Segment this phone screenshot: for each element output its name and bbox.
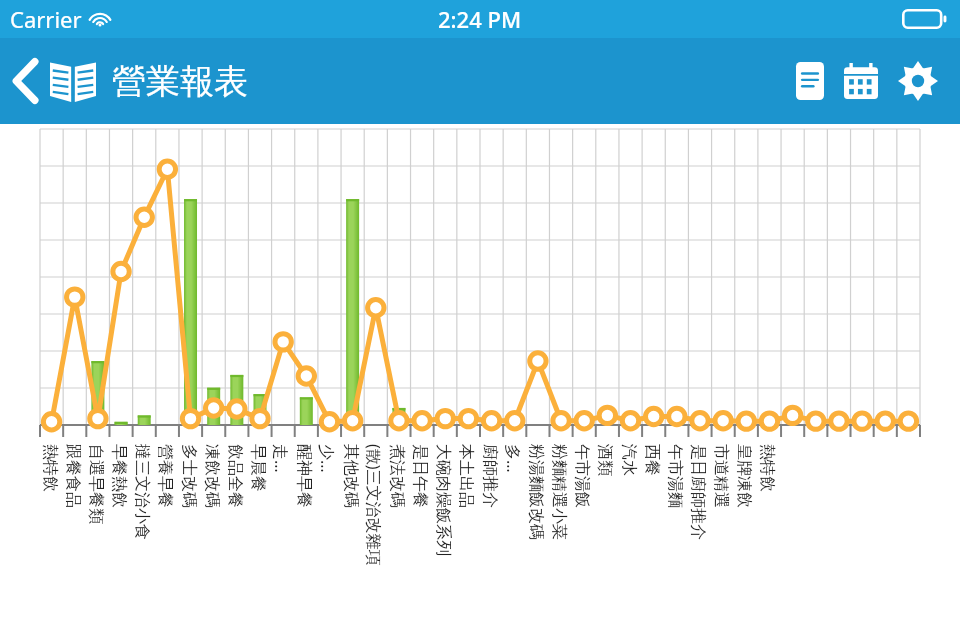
- staticText: Carrier: [10, 4, 82, 34]
- button[interactable]: List report: [786, 52, 834, 110]
- button[interactable]: Back: [0, 43, 50, 119]
- button[interactable]: Settings: [888, 51, 948, 111]
- staticText: 2:24 PM: [438, 4, 522, 34]
- staticText: 營業報表: [112, 60, 248, 103]
- button[interactable]: Grid report: [834, 53, 888, 109]
